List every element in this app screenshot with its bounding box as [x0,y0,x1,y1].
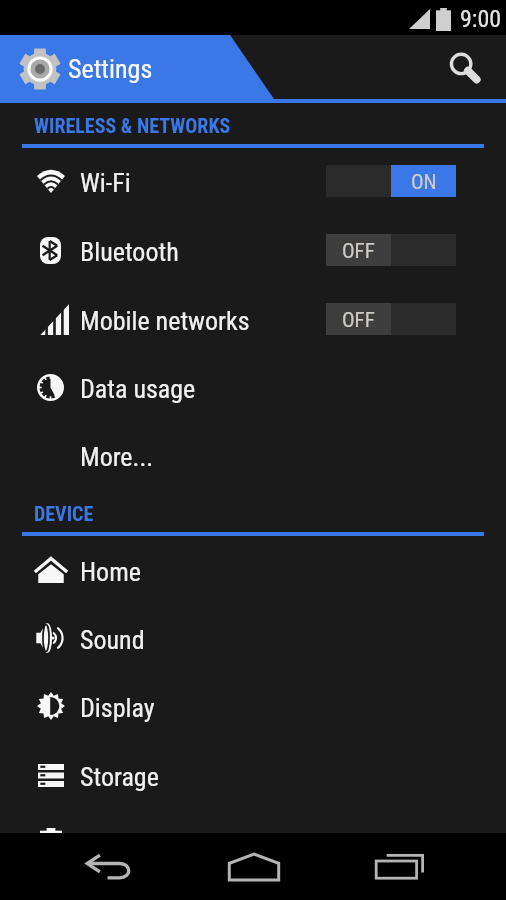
button[interactable]: Sound [0,606,506,674]
staticText: Battery [80,830,154,860]
staticText: ON [411,170,437,195]
button[interactable]: Battery [0,811,506,879]
staticText: Sound [80,625,145,655]
staticText: More... [80,442,154,472]
staticText: Storage [80,762,159,792]
staticText: Data usage [80,374,196,404]
button[interactable]: Wi-Fi [0,149,506,217]
staticText: 9:00 [460,5,502,33]
button[interactable]: OFF [326,234,456,266]
staticText: Settings [68,54,153,84]
staticText: OFF [342,239,375,264]
staticText: Bluetooth [80,237,179,267]
button[interactable]: OFF [326,303,456,335]
staticText: Wi-Fi [80,168,131,198]
staticText: Display [80,693,155,723]
button[interactable]: Storage [0,743,506,811]
button[interactable]: More... [0,423,506,491]
staticText: Home [80,557,141,587]
staticText: OFF [342,308,375,333]
button[interactable]: Back [60,833,157,900]
button[interactable]: Search [432,37,496,101]
button[interactable]: Home [205,833,302,900]
button[interactable]: Data usage [0,355,506,423]
staticText: DEVICE [34,502,94,525]
button[interactable]: Mobile networks [0,287,506,355]
button[interactable]: Recent apps [351,833,448,900]
button[interactable]: Display [0,674,506,742]
button[interactable]: Bluetooth [0,218,506,286]
button[interactable]: Home [0,538,506,606]
button[interactable]: ON [326,165,456,197]
staticText: WIRELESS & NETWORKS [34,114,231,137]
staticText: Mobile networks [80,306,250,336]
